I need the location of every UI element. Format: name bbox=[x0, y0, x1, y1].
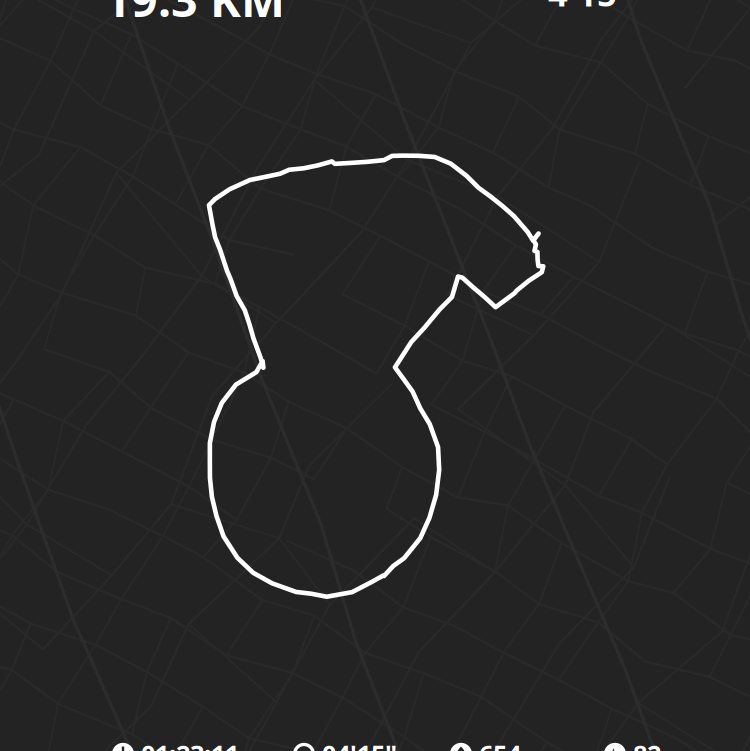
staticText: 654 bbox=[479, 737, 521, 751]
staticText: 04'15" bbox=[322, 737, 397, 751]
staticText: 4'15" bbox=[548, 0, 634, 16]
staticText: 19.3 KM bbox=[104, 0, 285, 30]
staticText: 82 bbox=[633, 737, 661, 751]
staticText: 01:23:11 bbox=[141, 737, 239, 751]
